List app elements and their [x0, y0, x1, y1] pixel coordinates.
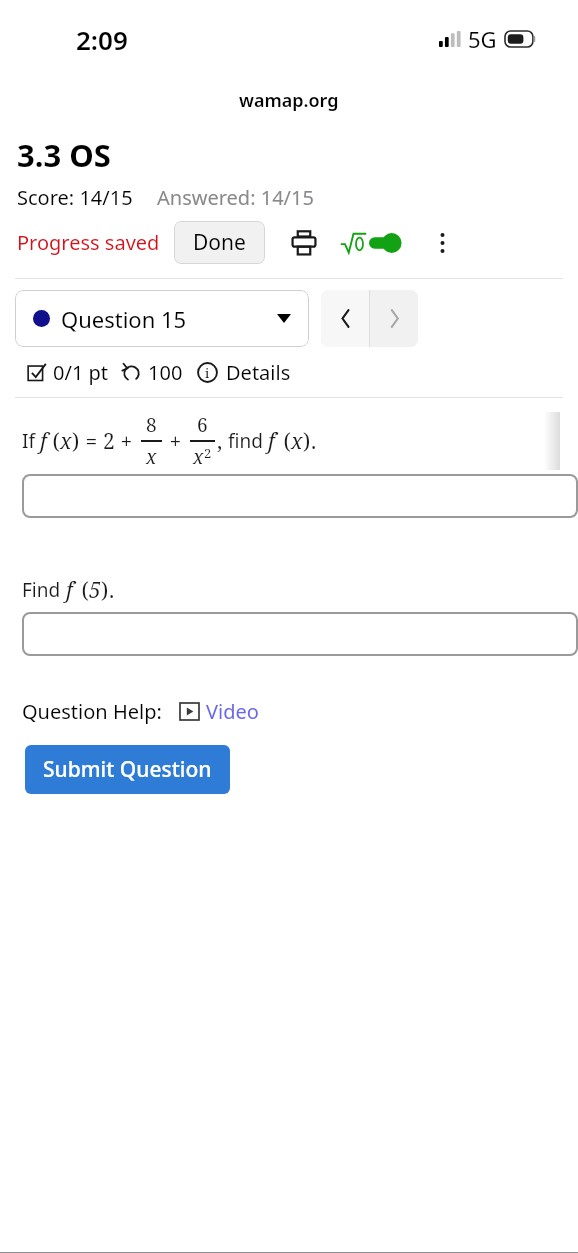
staticText: .: [311, 427, 317, 456]
staticText: Video: [206, 698, 259, 725]
staticText: i: [205, 364, 210, 382]
staticText: Score: 14/15: [17, 184, 133, 211]
button[interactable]: [22, 612, 578, 656]
staticText: Answered: 14/15: [157, 184, 314, 211]
staticText: ): [303, 427, 311, 456]
staticText: Details: [226, 359, 291, 386]
staticText: ): [101, 576, 109, 605]
staticText: 3.3 OS: [17, 134, 111, 176]
staticText: 6: [197, 412, 208, 438]
staticText: f: [40, 427, 47, 456]
staticText: +: [164, 427, 187, 456]
staticText: Question 15: [61, 304, 187, 334]
staticText: Submit Question: [43, 755, 212, 784]
staticText: wamap.org: [239, 88, 339, 113]
staticText: 8: [146, 412, 157, 438]
button[interactable]: Print: [289, 228, 319, 258]
button[interactable]: Toggle math editor: [341, 232, 405, 254]
staticText: ′: [73, 575, 76, 596]
staticText: If: [22, 428, 40, 454]
staticText: Progress saved: [17, 229, 160, 256]
staticText: .: [109, 576, 115, 605]
staticText: (: [47, 427, 60, 456]
staticText: 5G: [468, 24, 497, 54]
staticText: ): [72, 427, 80, 456]
staticText: x: [193, 444, 204, 470]
button[interactable]: Video: [180, 698, 259, 725]
staticText: ′: [275, 426, 278, 447]
staticText: 5: [89, 576, 101, 605]
staticText: f: [268, 427, 275, 456]
staticText: (: [278, 427, 291, 456]
staticText: find: [228, 428, 268, 454]
staticText: x: [146, 444, 157, 470]
staticText: 2: [204, 444, 212, 462]
staticText: 2: [103, 427, 115, 456]
button[interactable]: Submit Question: [25, 745, 230, 794]
button[interactable]: [22, 474, 578, 518]
staticText: +: [115, 427, 138, 456]
staticText: 0/1 pt: [53, 359, 109, 386]
button[interactable]: More options: [429, 230, 455, 256]
staticText: f: [66, 576, 73, 605]
staticText: ,: [217, 427, 228, 456]
staticText: 100: [148, 359, 183, 386]
button[interactable]: Next question: [370, 290, 418, 347]
staticText: (: [76, 576, 89, 605]
staticText: Find: [22, 577, 66, 603]
staticText: Done: [193, 228, 246, 257]
staticText: =: [80, 427, 103, 456]
button[interactable]: i: [197, 359, 291, 386]
staticText: Question Help:: [22, 698, 162, 725]
button[interactable]: Question 15: [15, 290, 309, 347]
staticText: 2:09: [76, 22, 128, 57]
button[interactable]: Done: [174, 221, 265, 264]
staticText: x: [60, 427, 72, 456]
staticText: x: [291, 427, 303, 456]
button[interactable]: Previous question: [321, 290, 369, 347]
